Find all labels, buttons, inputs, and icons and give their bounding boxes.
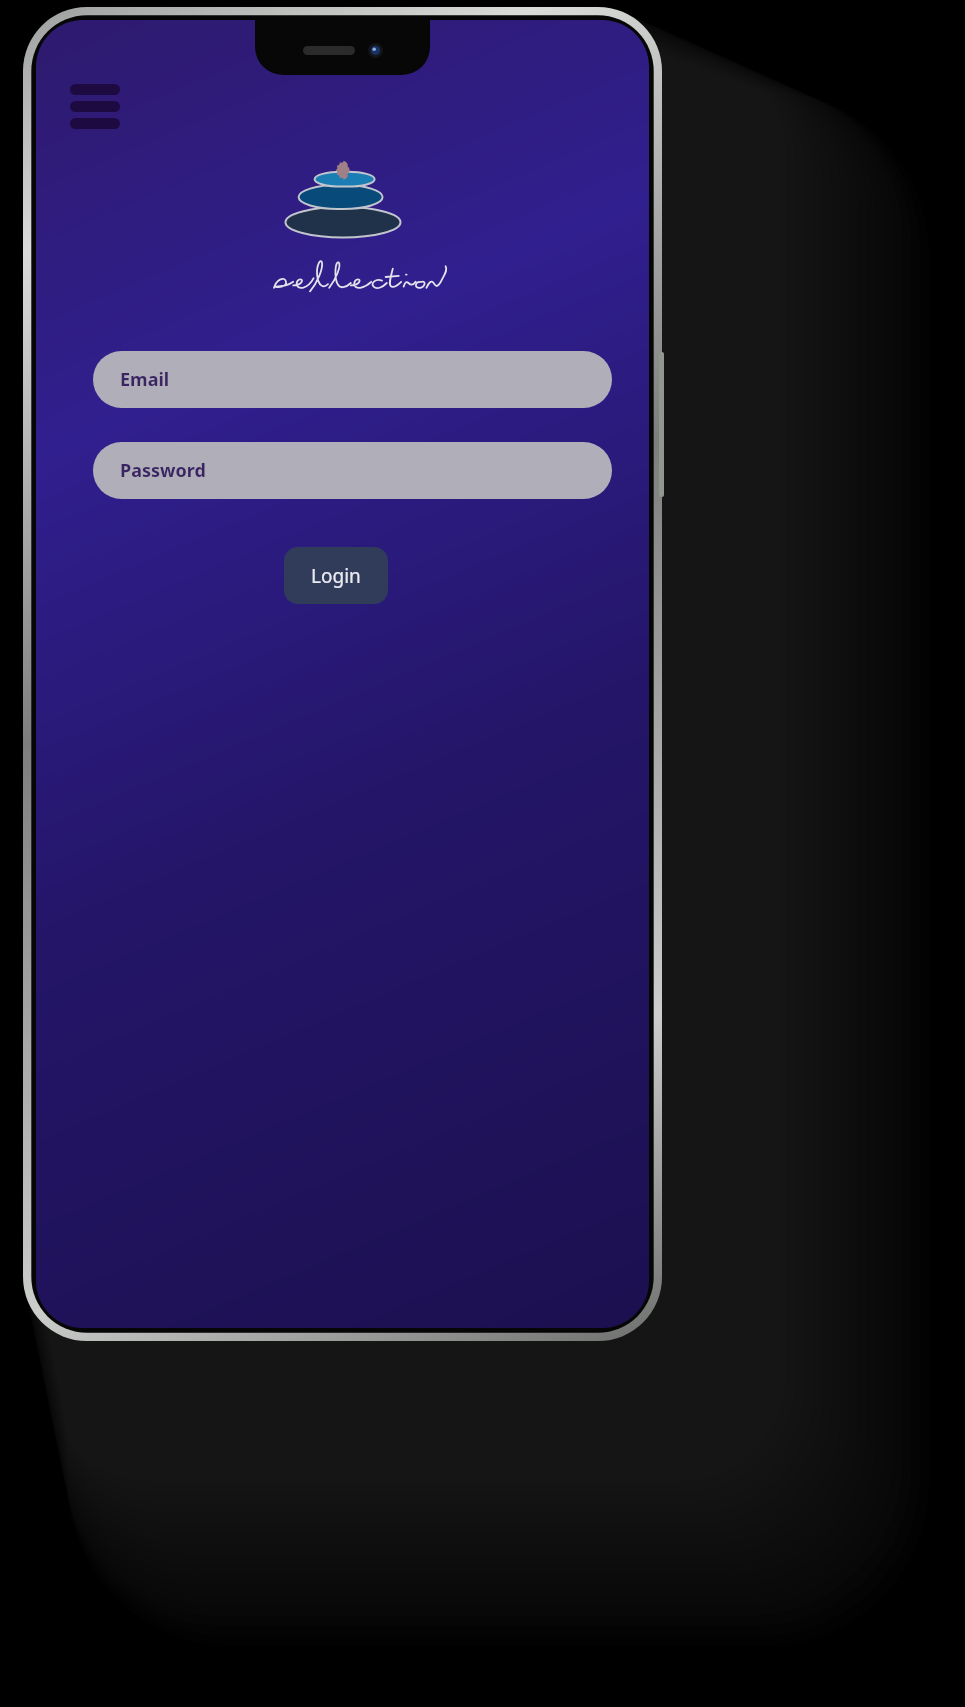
staticText: Password xyxy=(120,458,206,483)
button[interactable]: Open navigation menu xyxy=(54,75,136,137)
button[interactable]: Email xyxy=(93,351,612,408)
other: Reflection logo xyxy=(243,151,443,311)
staticText: Email xyxy=(120,367,170,392)
button[interactable]: Login xyxy=(284,547,388,604)
staticText: Login xyxy=(311,563,361,589)
button[interactable]: Password xyxy=(93,442,612,499)
